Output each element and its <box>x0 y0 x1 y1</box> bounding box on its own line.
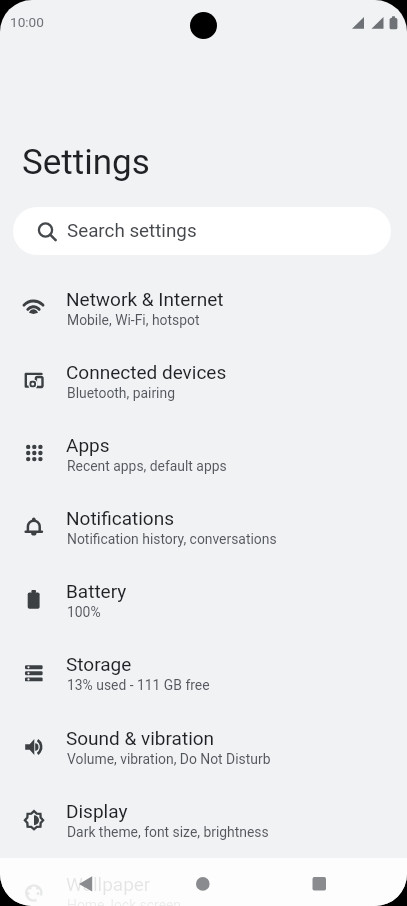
staticText: Recent apps, default apps <box>67 458 227 474</box>
button[interactable]: Wallpaper <box>0 855 407 906</box>
staticText: Mobile, Wi-Fi, hotspot <box>67 312 200 328</box>
staticText: Bluetooth, pairing <box>67 385 175 401</box>
staticText: Settings <box>22 142 150 183</box>
button[interactable]: Apps <box>0 416 407 489</box>
staticText: Notification history, conversations <box>67 531 277 547</box>
button[interactable] <box>271 858 407 906</box>
staticText: Home, lock screen <box>67 897 182 906</box>
button[interactable] <box>135 858 271 906</box>
button[interactable]: Battery <box>0 562 407 635</box>
button[interactable]: Network & Internet <box>0 270 407 343</box>
staticText: Volume, vibration, Do Not Disturb <box>67 751 271 767</box>
staticText: Dark theme, font size, brightness <box>67 824 269 840</box>
staticText: Apps <box>66 434 110 456</box>
staticText: Sound & vibration <box>66 727 215 749</box>
staticText: Connected devices <box>66 361 227 383</box>
staticText: 100% <box>67 604 101 620</box>
staticText: 13% used - 111 GB free <box>67 677 210 693</box>
staticText: Notifications <box>66 507 175 529</box>
staticText: Display <box>66 800 128 822</box>
button[interactable]: Display <box>0 782 407 855</box>
button[interactable]: Connected devices <box>0 343 407 416</box>
button[interactable]: Sound & vibration <box>0 709 407 782</box>
button[interactable]: Search settings <box>13 207 391 255</box>
button[interactable]: Notifications <box>0 489 407 562</box>
staticText: 10:00 <box>10 14 44 30</box>
button[interactable] <box>0 858 135 906</box>
staticText: Network & Internet <box>66 288 224 310</box>
staticText: Search settings <box>67 220 197 242</box>
staticText: Storage <box>66 653 132 675</box>
staticText: Wallpaper <box>66 873 151 895</box>
staticText: Battery <box>66 580 127 602</box>
button[interactable]: Storage <box>0 635 407 708</box>
